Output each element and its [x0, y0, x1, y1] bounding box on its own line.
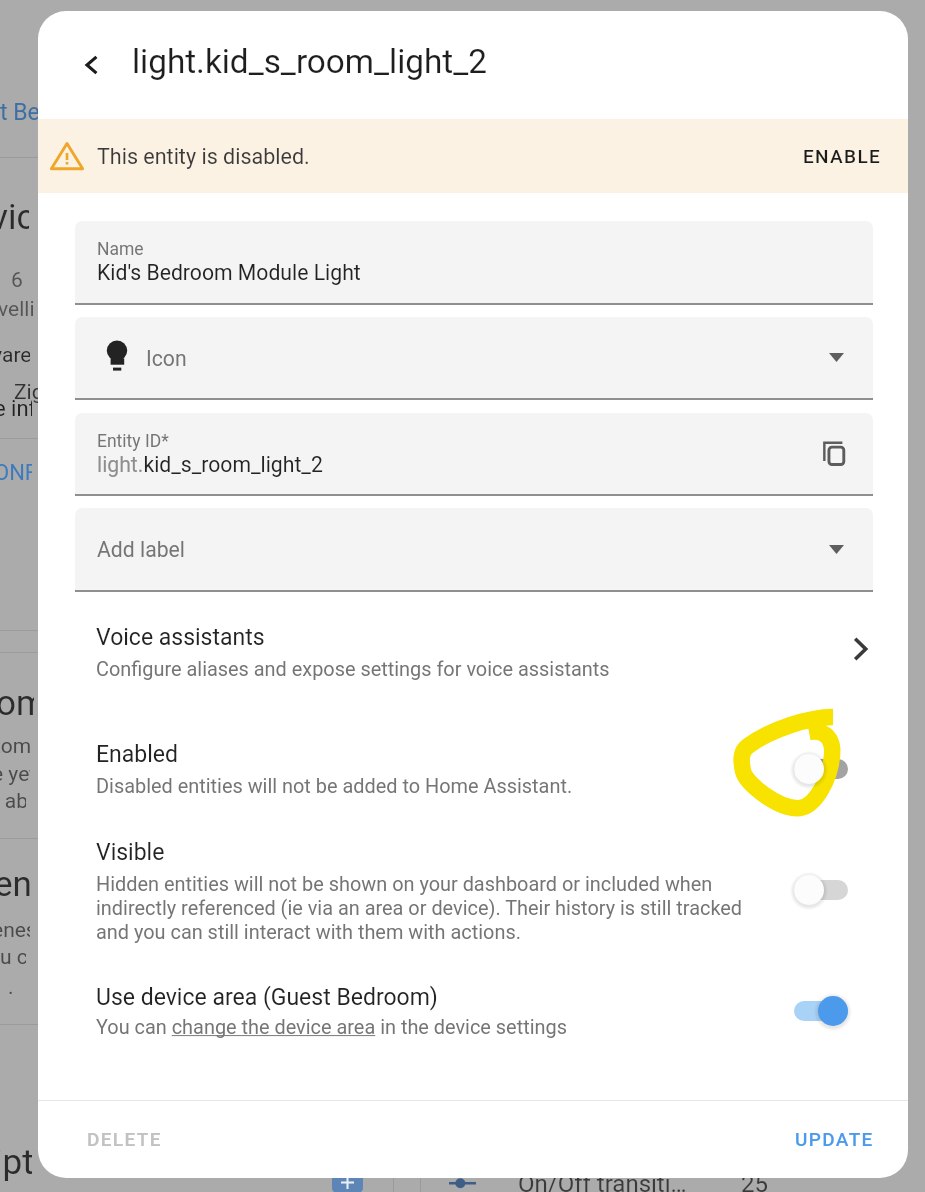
staticText: Icon: [146, 346, 187, 371]
staticText: On/Off transiti…: [518, 1170, 687, 1192]
button[interactable]: Icon: [75, 317, 873, 400]
staticText: Name: [97, 239, 144, 260]
button[interactable]: Add label: [75, 508, 873, 592]
staticText: light.kid_s_room_light_2: [97, 452, 323, 477]
staticText: vare:: [0, 343, 30, 368]
staticText: velli: [0, 297, 35, 322]
staticText: UPDATE: [795, 1128, 874, 1150]
button[interactable]: Use device area switch: [782, 989, 860, 1033]
staticText: Entity ID*: [97, 431, 169, 452]
button[interactable]: Enabled switch: [782, 747, 860, 791]
staticText: e yet: [0, 762, 30, 787]
button[interactable]: Back: [67, 41, 115, 89]
staticText: ou ca: [0, 945, 26, 970]
staticText: This entity is disabled.: [97, 144, 310, 169]
staticText: e inf: [0, 396, 32, 422]
staticText: 6: [11, 268, 23, 293]
button[interactable]: Copy entity ID: [811, 431, 857, 477]
staticText: Enabled: [96, 741, 178, 768]
staticText: Visible: [96, 839, 165, 866]
staticText: .: [8, 975, 14, 1000]
staticText: ipts: [0, 1142, 32, 1183]
staticText: DELETE: [87, 1128, 162, 1150]
staticText: 25: [741, 1170, 768, 1192]
staticText: enes: [0, 918, 30, 943]
staticText: Disabled entities will not be added to H…: [96, 775, 573, 798]
button[interactable]: Voice assistants: [96, 616, 872, 682]
button[interactable]: Entity ID*: [75, 413, 873, 496]
button[interactable]: ENABLE: [794, 136, 891, 176]
button[interactable]: UPDATE: [784, 1119, 885, 1159]
staticText: Use device area (Guest Bedroom): [96, 984, 438, 1011]
staticText: vice: [0, 197, 29, 238]
staticText: Hidden entities will not be shown on you…: [96, 873, 761, 944]
staticText: tom: [0, 734, 32, 759]
staticText: ENABLE: [803, 145, 882, 167]
button[interactable]: Name: [75, 221, 873, 305]
button[interactable]: DELETE: [76, 1119, 173, 1159]
button[interactable]: Enabled: [96, 741, 761, 798]
staticText: n abc: [0, 789, 26, 814]
staticText: Kid's Bedroom Module Light: [97, 260, 361, 285]
staticText: You can change the device area in the de…: [96, 1016, 567, 1039]
button[interactable]: Visible: [96, 839, 761, 944]
button[interactable]: Visible switch: [782, 868, 860, 912]
staticText: om: [0, 683, 34, 724]
staticText: Configure aliases and expose settings fo…: [96, 658, 610, 681]
staticText: light.kid_s_room_light_2: [132, 42, 487, 81]
button[interactable]: Use device area (Guest Bedroom): [96, 984, 761, 1039]
staticText: Voice assistants: [96, 624, 265, 651]
staticText: t Be: [0, 99, 38, 126]
staticText: ene: [0, 864, 32, 905]
staticText: ONF: [0, 460, 32, 486]
staticText: Zig: [14, 380, 38, 405]
staticText: Add label: [97, 537, 185, 562]
